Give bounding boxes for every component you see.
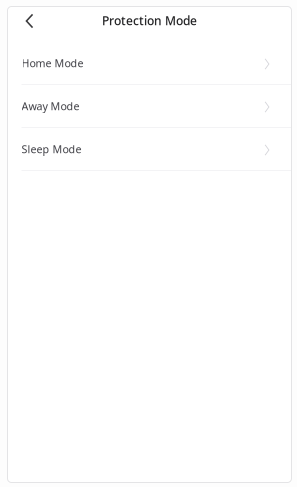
staticText: Sleep Mode xyxy=(21,142,81,156)
button[interactable]: Home Mode xyxy=(7,42,291,84)
button[interactable]: Away Mode xyxy=(7,85,291,127)
button[interactable]: Sleep Mode xyxy=(7,128,291,170)
staticText: Home Mode xyxy=(21,56,83,70)
button[interactable]: Back xyxy=(16,7,42,33)
staticText: Away Mode xyxy=(21,99,79,113)
staticText: Protection Mode xyxy=(102,12,197,28)
